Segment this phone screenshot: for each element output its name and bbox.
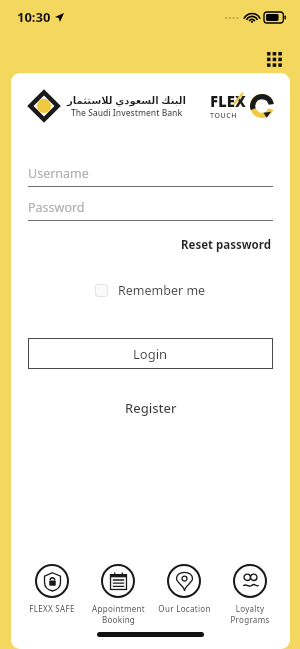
- staticText: FLEXX SAFE: [29, 603, 75, 614]
- staticText: FLEX: [210, 91, 246, 111]
- staticText: The Saudi Investment Bank: [71, 107, 183, 119]
- staticText: Register: [125, 399, 177, 417]
- button[interactable]: Loyalty Programs: [217, 562, 282, 625]
- staticText: Password: [28, 199, 85, 216]
- staticText: Reset password: [181, 237, 271, 253]
- button[interactable]: Our Location: [151, 562, 217, 614]
- staticText: البنك السعودي للاستثمار: [67, 93, 186, 107]
- staticText: Our Location: [158, 603, 211, 614]
- button[interactable]: FLEXX SAFE: [19, 562, 85, 614]
- staticText: Appointment Booking: [92, 603, 145, 625]
- button[interactable]: Password: [28, 195, 273, 221]
- staticText: 10:30: [17, 8, 51, 26]
- staticText: Login: [133, 345, 168, 363]
- staticText: Loyalty Programs: [230, 603, 270, 625]
- staticText: Remember me: [118, 282, 206, 299]
- staticText: TOUCH: [210, 111, 238, 121]
- button[interactable]: Reset password: [179, 233, 273, 257]
- button[interactable]: Username: [28, 161, 273, 187]
- button[interactable]: Remember me: [91, 278, 210, 303]
- button[interactable]: Login: [28, 338, 273, 369]
- button[interactable]: Menu: [262, 47, 288, 73]
- staticText: Username: [28, 165, 89, 182]
- button[interactable]: Appointment Booking: [85, 562, 151, 625]
- button[interactable]: Register: [119, 393, 183, 423]
